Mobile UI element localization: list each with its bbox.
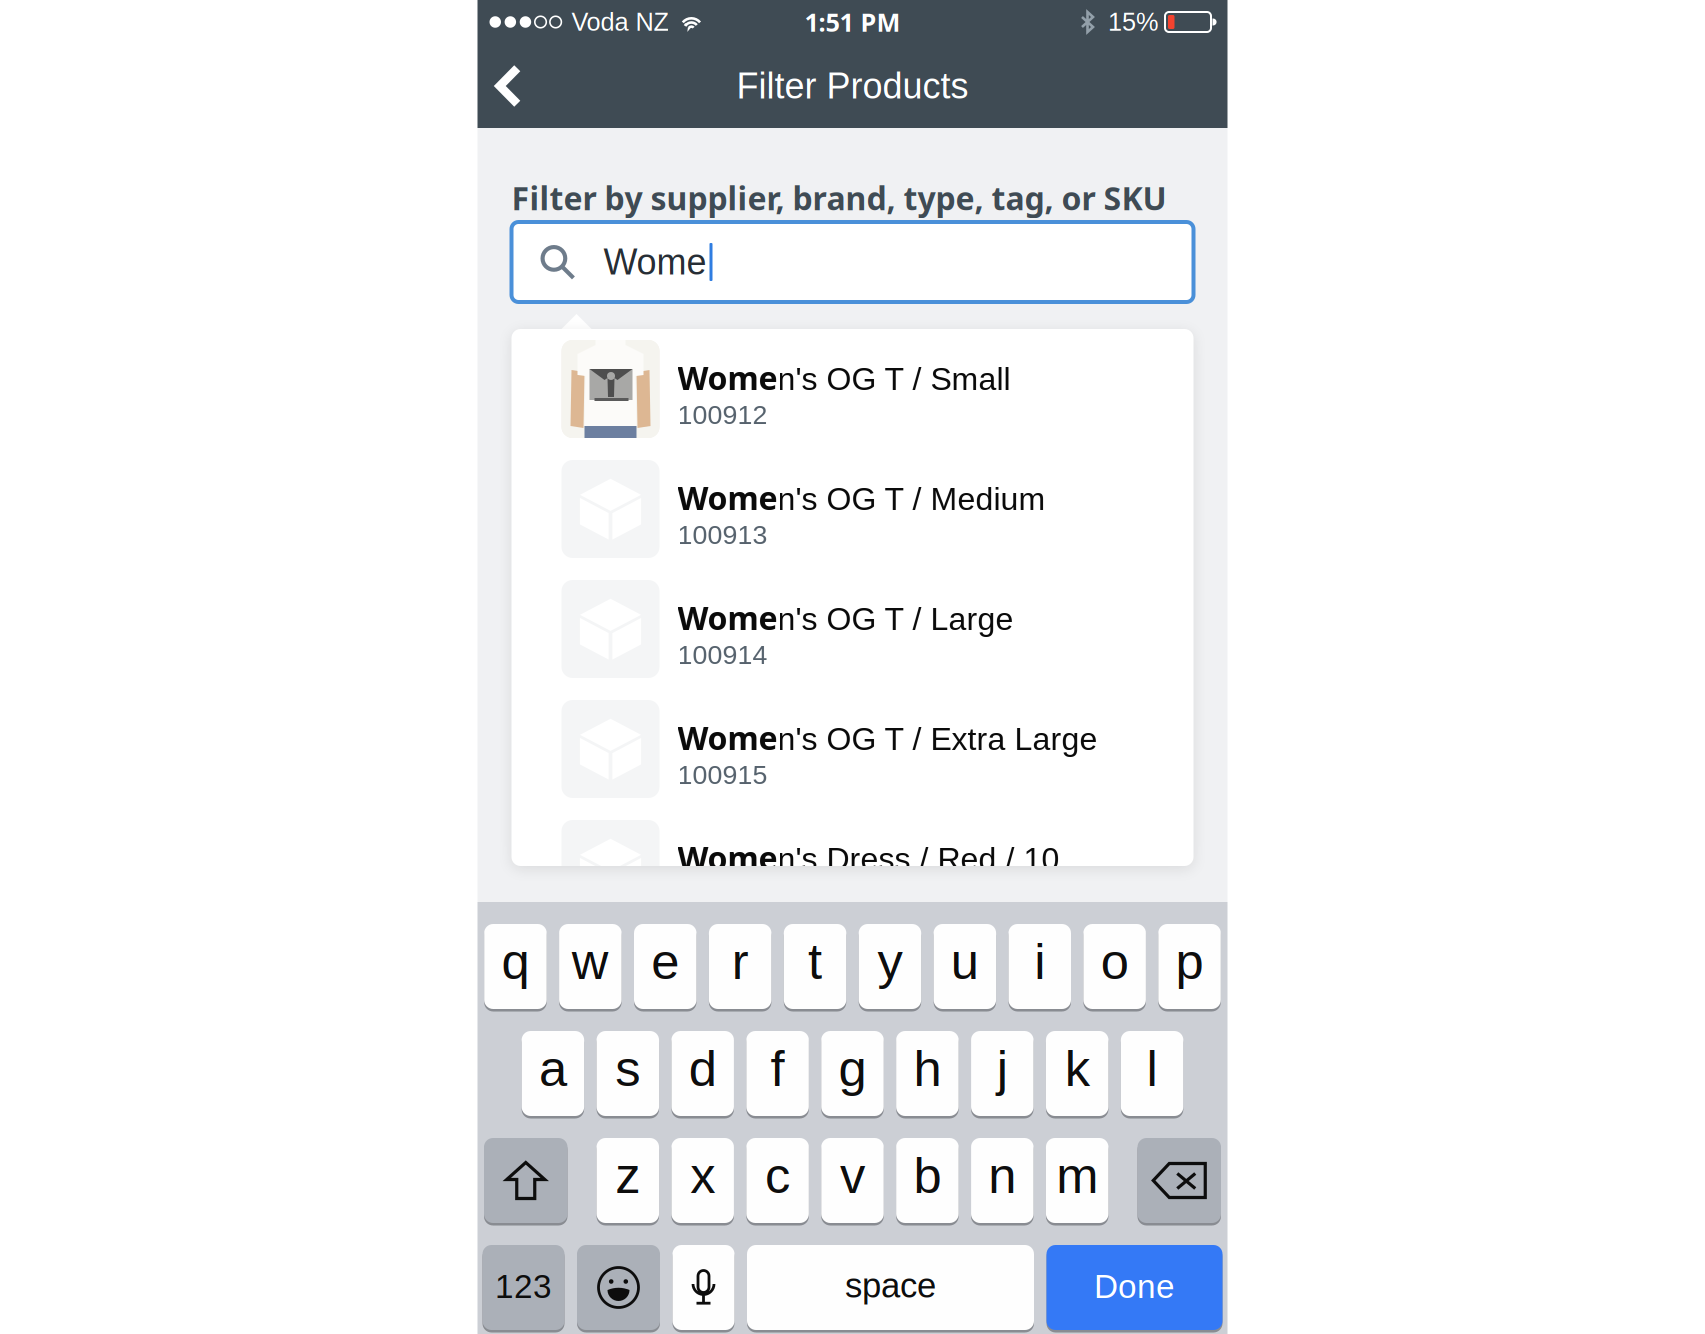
staticText: h <box>913 1040 941 1097</box>
button[interactable]: f <box>746 1029 809 1118</box>
button[interactable]: i <box>1008 922 1071 1011</box>
button[interactable]: Shift <box>484 1136 567 1225</box>
staticText: 1:51 PM <box>804 5 900 39</box>
button[interactable]: 123 <box>482 1243 564 1332</box>
staticText: v <box>840 1147 865 1204</box>
button[interactable]: d <box>671 1029 734 1118</box>
button[interactable]: r <box>709 922 771 1011</box>
staticText: d <box>689 1040 717 1097</box>
button[interactable]: g <box>821 1029 884 1118</box>
button[interactable]: z <box>596 1136 659 1225</box>
button[interactable]: t <box>784 922 846 1011</box>
button[interactable]: p <box>1158 922 1221 1011</box>
staticText: Women's OG T / Small <box>677 356 1010 399</box>
staticText: u <box>951 933 979 990</box>
button[interactable]: x <box>671 1136 734 1225</box>
staticText: 123 <box>495 1268 552 1305</box>
staticText: Women's OG T / Medium <box>677 476 1045 519</box>
staticText: 100912 <box>677 400 767 430</box>
button[interactable]: k <box>1046 1029 1108 1118</box>
button[interactable]: Back <box>477 44 539 128</box>
button[interactable]: Done <box>1046 1243 1222 1332</box>
button[interactable]: Women's OG T / Medium <box>511 449 1193 569</box>
staticText: Wome <box>603 242 706 282</box>
button[interactable]: b <box>896 1136 959 1225</box>
button[interactable]: o <box>1083 922 1146 1011</box>
staticText: m <box>1056 1147 1098 1204</box>
button[interactable]: q <box>484 922 547 1011</box>
staticText: i <box>1034 933 1045 990</box>
staticText: Women's Dress / Red / 10 <box>677 836 1059 879</box>
staticText: p <box>1175 933 1203 990</box>
button[interactable]: h <box>896 1029 959 1118</box>
staticText: Filter Products <box>736 66 968 106</box>
button[interactable]: s <box>596 1029 659 1118</box>
staticText: j <box>997 1040 1008 1097</box>
staticText: b <box>913 1147 941 1204</box>
button[interactable]: c <box>746 1136 809 1225</box>
staticText: n <box>988 1147 1016 1204</box>
button[interactable]: Women's OG T / Large <box>511 569 1193 689</box>
staticText: f <box>771 1040 785 1097</box>
staticText: t <box>808 933 822 990</box>
button[interactable]: Women's Dress / Red / 10 <box>511 809 1193 929</box>
staticText: k <box>1065 1040 1090 1097</box>
button[interactable]: Dictate <box>672 1243 734 1332</box>
staticText: 100913 <box>677 520 767 550</box>
button[interactable]: n <box>971 1136 1033 1225</box>
staticText: y <box>877 933 902 990</box>
button[interactable]: w <box>559 922 622 1011</box>
staticText: 100914 <box>677 640 767 670</box>
staticText: w <box>572 933 609 990</box>
button[interactable]: Women's OG T / Extra Large <box>511 689 1193 809</box>
staticText: e <box>651 933 679 990</box>
staticText: r <box>732 933 749 990</box>
staticText: Women's OG T / Extra Large <box>677 716 1097 759</box>
button[interactable]: y <box>859 922 921 1011</box>
button[interactable]: Delete <box>1137 1136 1221 1225</box>
staticText: z <box>615 1147 640 1204</box>
staticText: 100920 <box>677 880 767 910</box>
button[interactable]: Women's OG T / Small <box>511 329 1193 449</box>
staticText: a <box>539 1040 567 1097</box>
staticText: s <box>615 1040 640 1097</box>
staticText: g <box>838 1040 866 1097</box>
button[interactable]: e <box>634 922 696 1011</box>
button[interactable]: m <box>1046 1136 1108 1225</box>
staticText: 100915 <box>677 760 767 790</box>
staticText: o <box>1101 933 1129 990</box>
staticText: Voda NZ <box>571 8 668 36</box>
button[interactable]: space <box>747 1243 1034 1332</box>
button[interactable]: l <box>1121 1029 1183 1118</box>
button[interactable]: u <box>934 922 996 1011</box>
button[interactable]: Emoji <box>577 1243 660 1332</box>
staticText: l <box>1147 1040 1158 1097</box>
button[interactable]: a <box>522 1029 584 1118</box>
staticText: Filter by supplier, brand, type, tag, or… <box>511 176 1166 220</box>
staticText: 15% <box>1108 8 1159 36</box>
staticText: q <box>501 933 529 990</box>
staticText: x <box>690 1147 715 1204</box>
staticText: Done <box>1094 1268 1175 1305</box>
staticText: Women's OG T / Large <box>677 596 1013 639</box>
button[interactable]: Wome <box>511 222 1193 302</box>
button[interactable]: v <box>821 1136 884 1225</box>
button[interactable]: j <box>971 1029 1033 1118</box>
staticText: c <box>765 1147 790 1204</box>
staticText: space <box>845 1266 936 1305</box>
